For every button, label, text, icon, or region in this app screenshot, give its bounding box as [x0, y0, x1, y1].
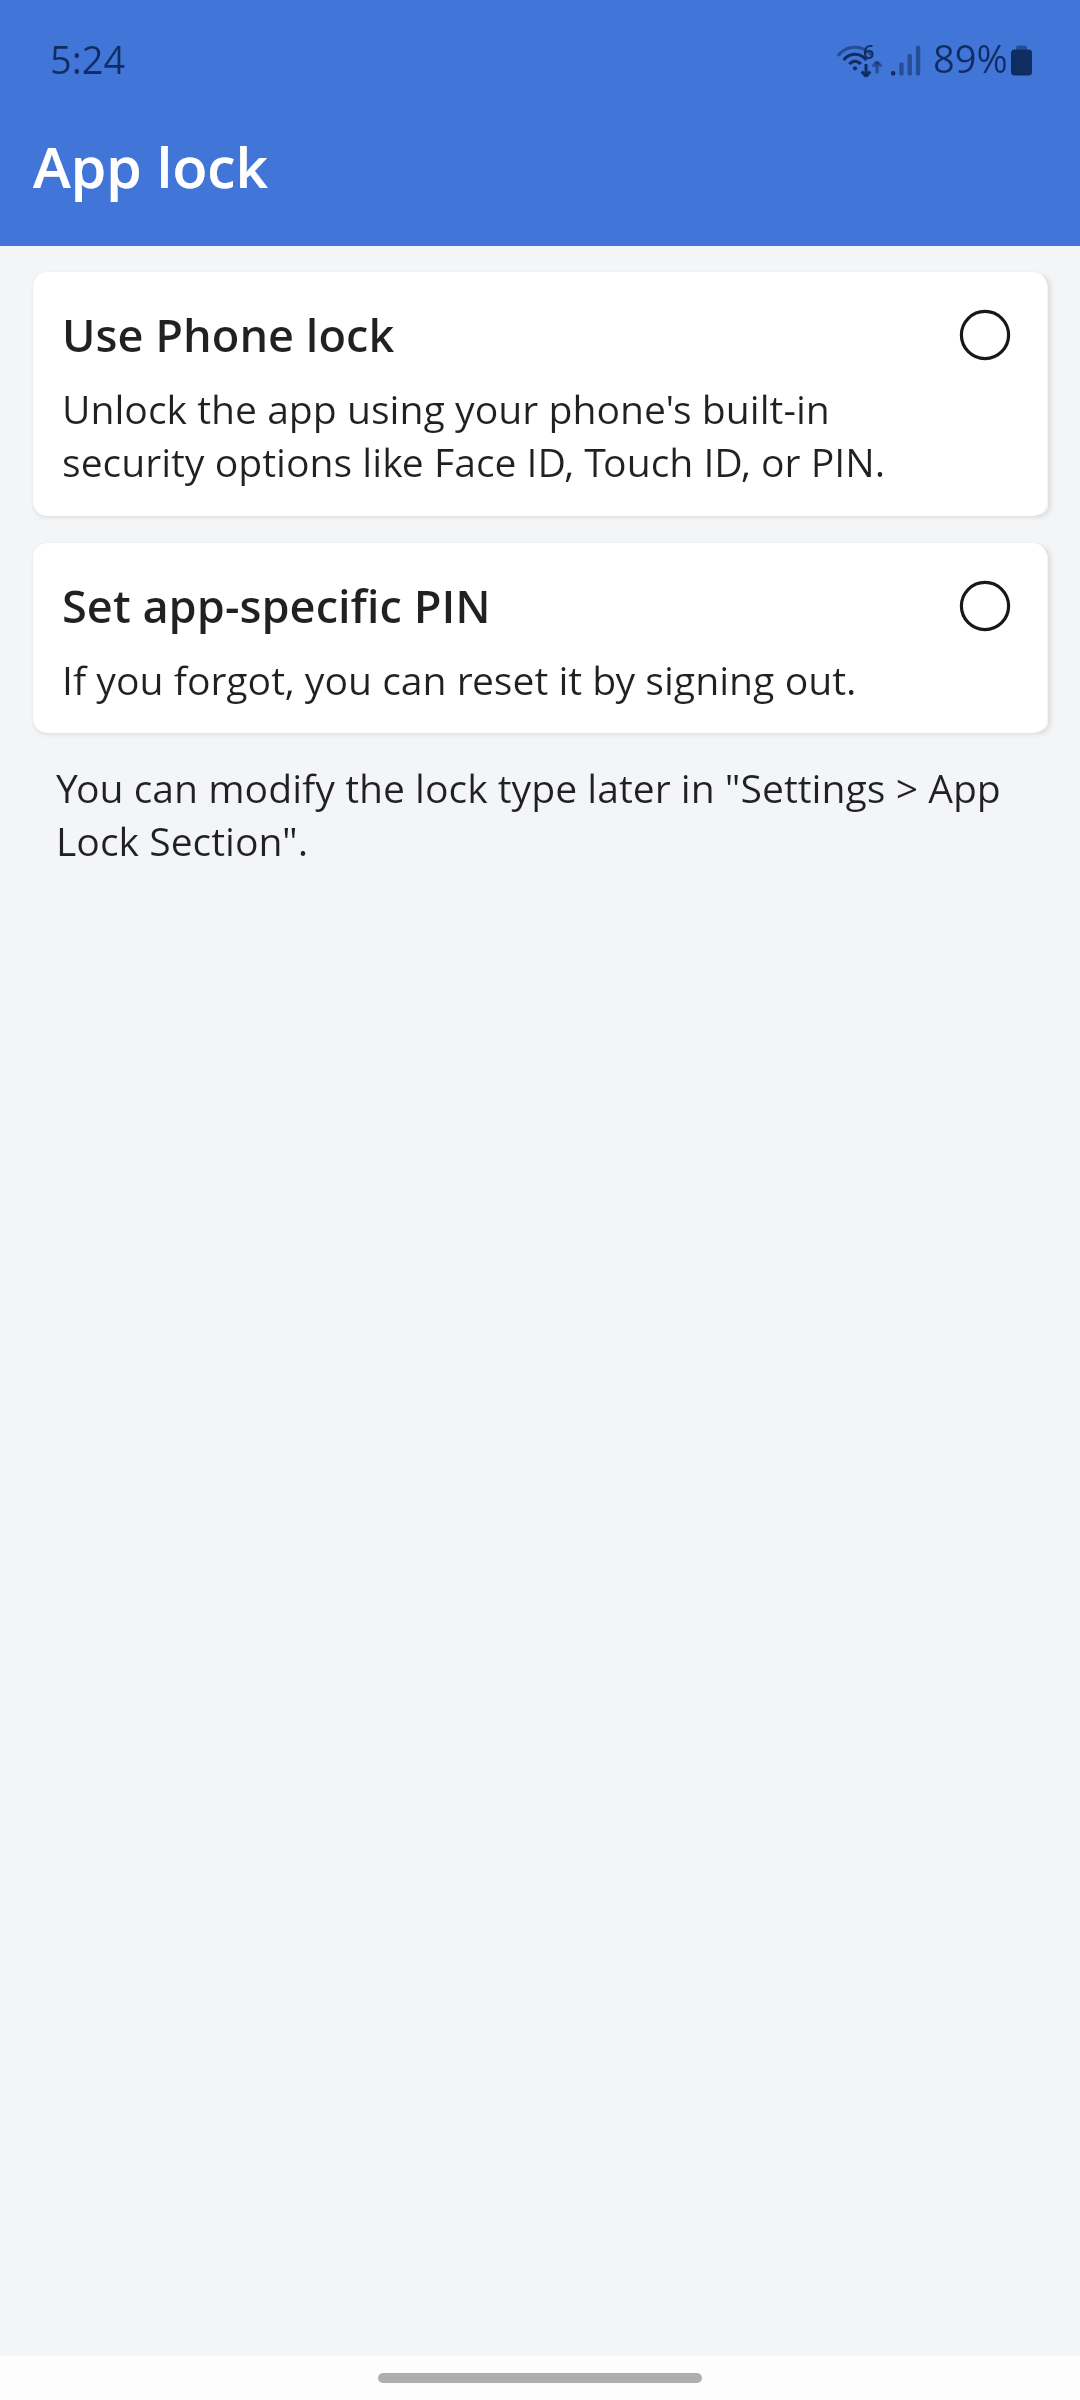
staticText: 5:24: [50, 33, 126, 85]
button[interactable]: Set app-specific PIN: [33, 543, 1047, 733]
staticText: If you forgot, you can reset it by signi…: [62, 653, 857, 706]
staticText: App lock: [33, 127, 269, 205]
button[interactable]: Select Use Phone lock: [957, 307, 1013, 363]
staticText: Use Phone lock: [62, 304, 957, 366]
button[interactable]: Select Set app-specific PIN: [957, 578, 1013, 634]
button[interactable]: Use Phone lock: [33, 272, 1047, 516]
staticText: 89%: [933, 32, 1008, 84]
staticText: Set app-specific PIN: [62, 575, 957, 637]
staticText: Unlock the app using your phone's built-…: [62, 382, 938, 488]
staticText: You can modify the lock type later in "S…: [56, 761, 1026, 867]
staticText: 6: [863, 38, 875, 65]
